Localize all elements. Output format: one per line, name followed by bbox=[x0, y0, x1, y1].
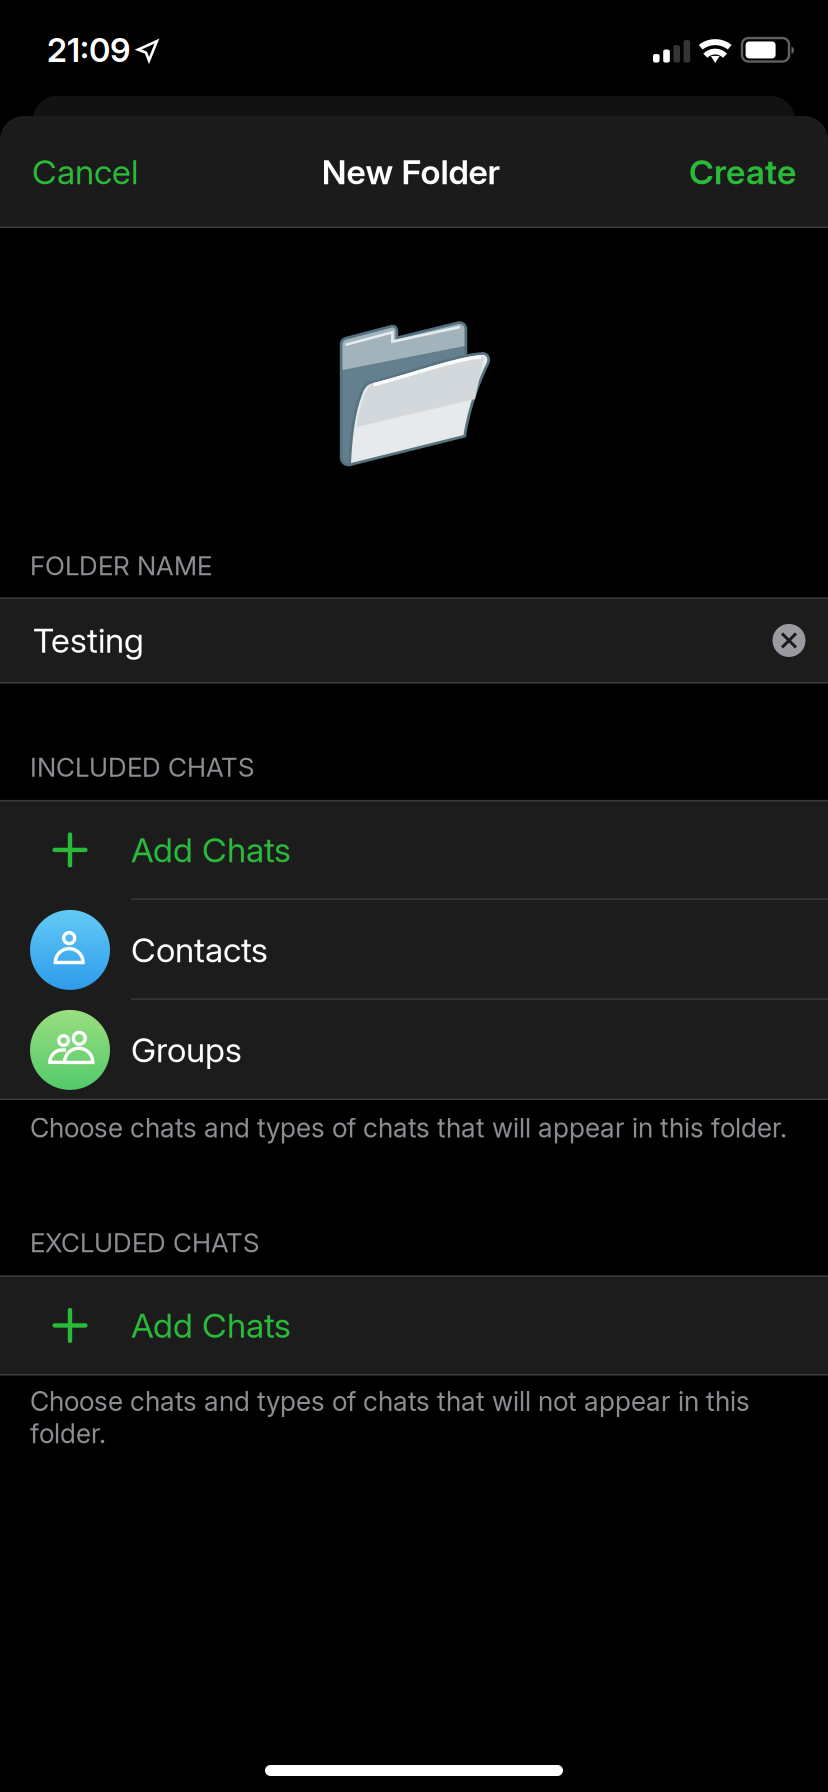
staticText: Create bbox=[689, 151, 796, 192]
button[interactable]: Testing bbox=[0, 597, 828, 683]
staticText: Add Chats bbox=[131, 829, 291, 870]
button[interactable]: Create bbox=[657, 116, 828, 228]
staticText: Testing bbox=[33, 620, 144, 661]
staticText: Contacts bbox=[131, 929, 268, 970]
staticText: Cancel bbox=[32, 151, 138, 192]
button[interactable]: Groups bbox=[0, 1000, 828, 1100]
staticText: Add Chats bbox=[131, 1305, 291, 1346]
staticText: Groups bbox=[131, 1029, 242, 1070]
button[interactable]: Add Chats bbox=[0, 1275, 828, 1375]
staticText: FOLDER NAME bbox=[30, 550, 212, 581]
button[interactable]: Add Chats bbox=[0, 800, 828, 900]
staticText: New Folder bbox=[321, 151, 500, 192]
button[interactable]: Cancel bbox=[0, 116, 170, 228]
staticText: Choose chats and types of chats that wil… bbox=[30, 1112, 787, 1144]
staticText: Choose chats and types of chats that wil… bbox=[30, 1385, 750, 1449]
button[interactable]: Contacts bbox=[0, 900, 828, 1000]
staticText: EXCLUDED CHATS bbox=[30, 1227, 259, 1258]
staticText: 21:09 bbox=[47, 30, 130, 70]
staticText: INCLUDED CHATS bbox=[30, 751, 254, 783]
